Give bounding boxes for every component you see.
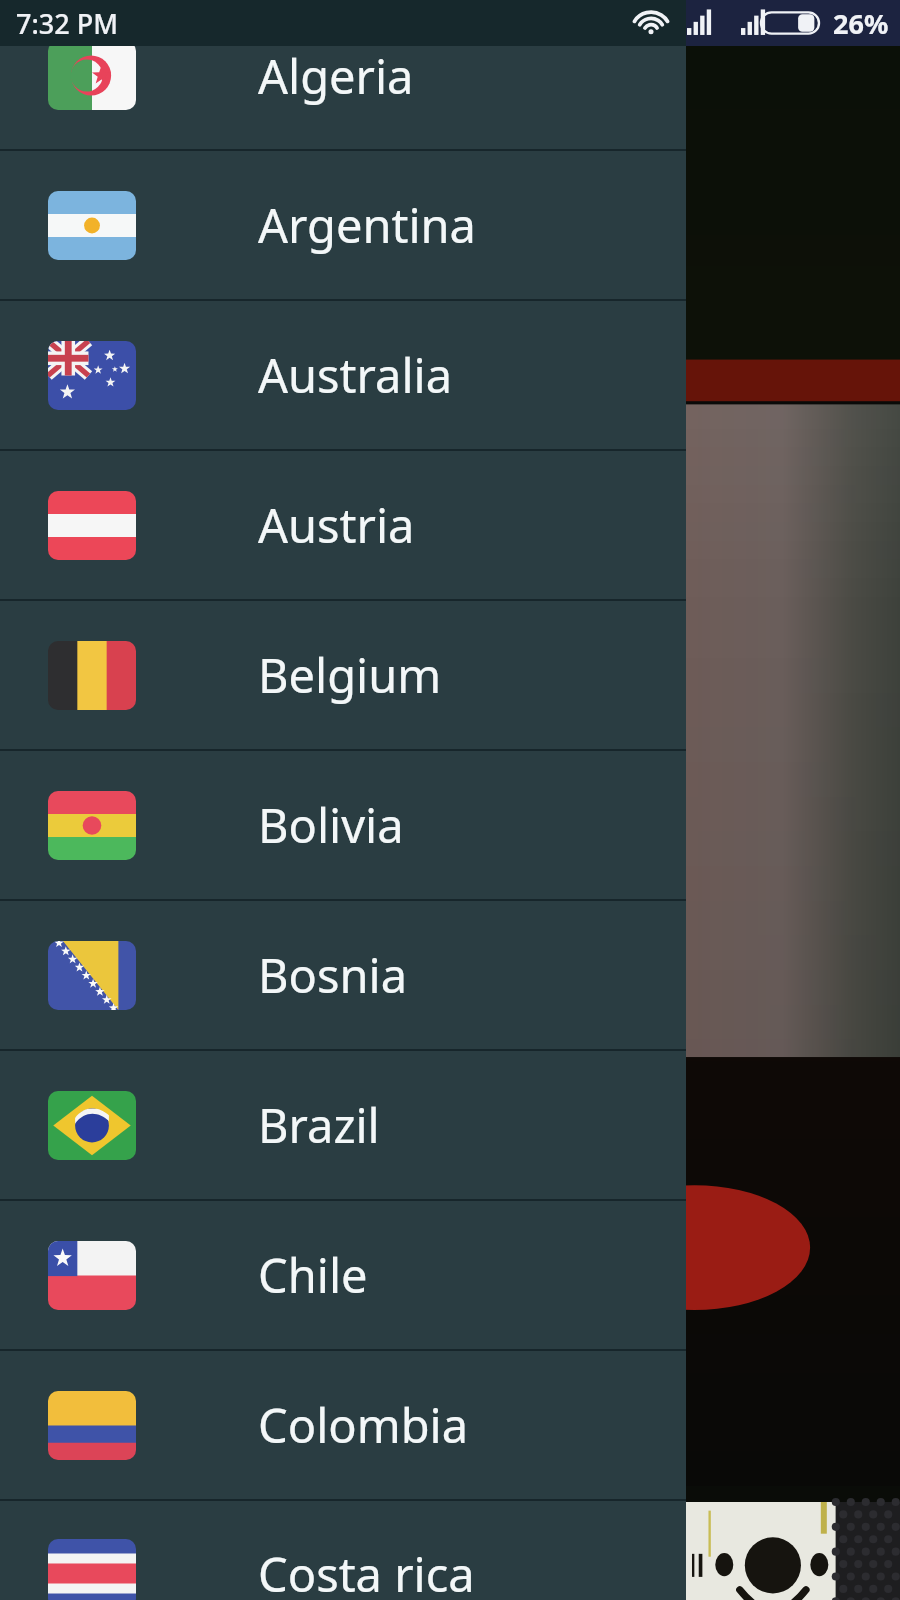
button[interactable]: Bolivia bbox=[0, 751, 686, 899]
staticText: Chile bbox=[258, 1243, 368, 1307]
staticText: Argentina bbox=[258, 193, 476, 257]
staticText: Algeria bbox=[258, 44, 414, 108]
button[interactable]: Brazil bbox=[0, 1051, 686, 1199]
button[interactable]: Chile bbox=[0, 1201, 686, 1349]
button[interactable]: Belgium bbox=[0, 601, 686, 749]
staticText: 7:32 PM bbox=[16, 5, 118, 42]
staticText: Bosnia bbox=[258, 943, 408, 1007]
button[interactable]: Austria bbox=[0, 451, 686, 599]
staticText: Costa rica bbox=[258, 1542, 475, 1600]
staticText: Belgium bbox=[258, 643, 442, 707]
button[interactable]: Australia bbox=[0, 301, 686, 449]
staticText: 26% bbox=[833, 5, 889, 42]
button[interactable]: Colombia bbox=[0, 1351, 686, 1499]
staticText: Colombia bbox=[258, 1393, 469, 1457]
button[interactable]: Argentina bbox=[0, 151, 686, 299]
staticText: Australia bbox=[258, 343, 453, 407]
staticText: Bolivia bbox=[258, 793, 404, 857]
staticText: Austria bbox=[258, 493, 415, 557]
button[interactable]: Algeria bbox=[0, 46, 686, 149]
button[interactable]: Costa rica bbox=[0, 1501, 686, 1600]
button[interactable]: Bosnia bbox=[0, 901, 686, 1049]
staticText: Brazil bbox=[258, 1093, 380, 1157]
